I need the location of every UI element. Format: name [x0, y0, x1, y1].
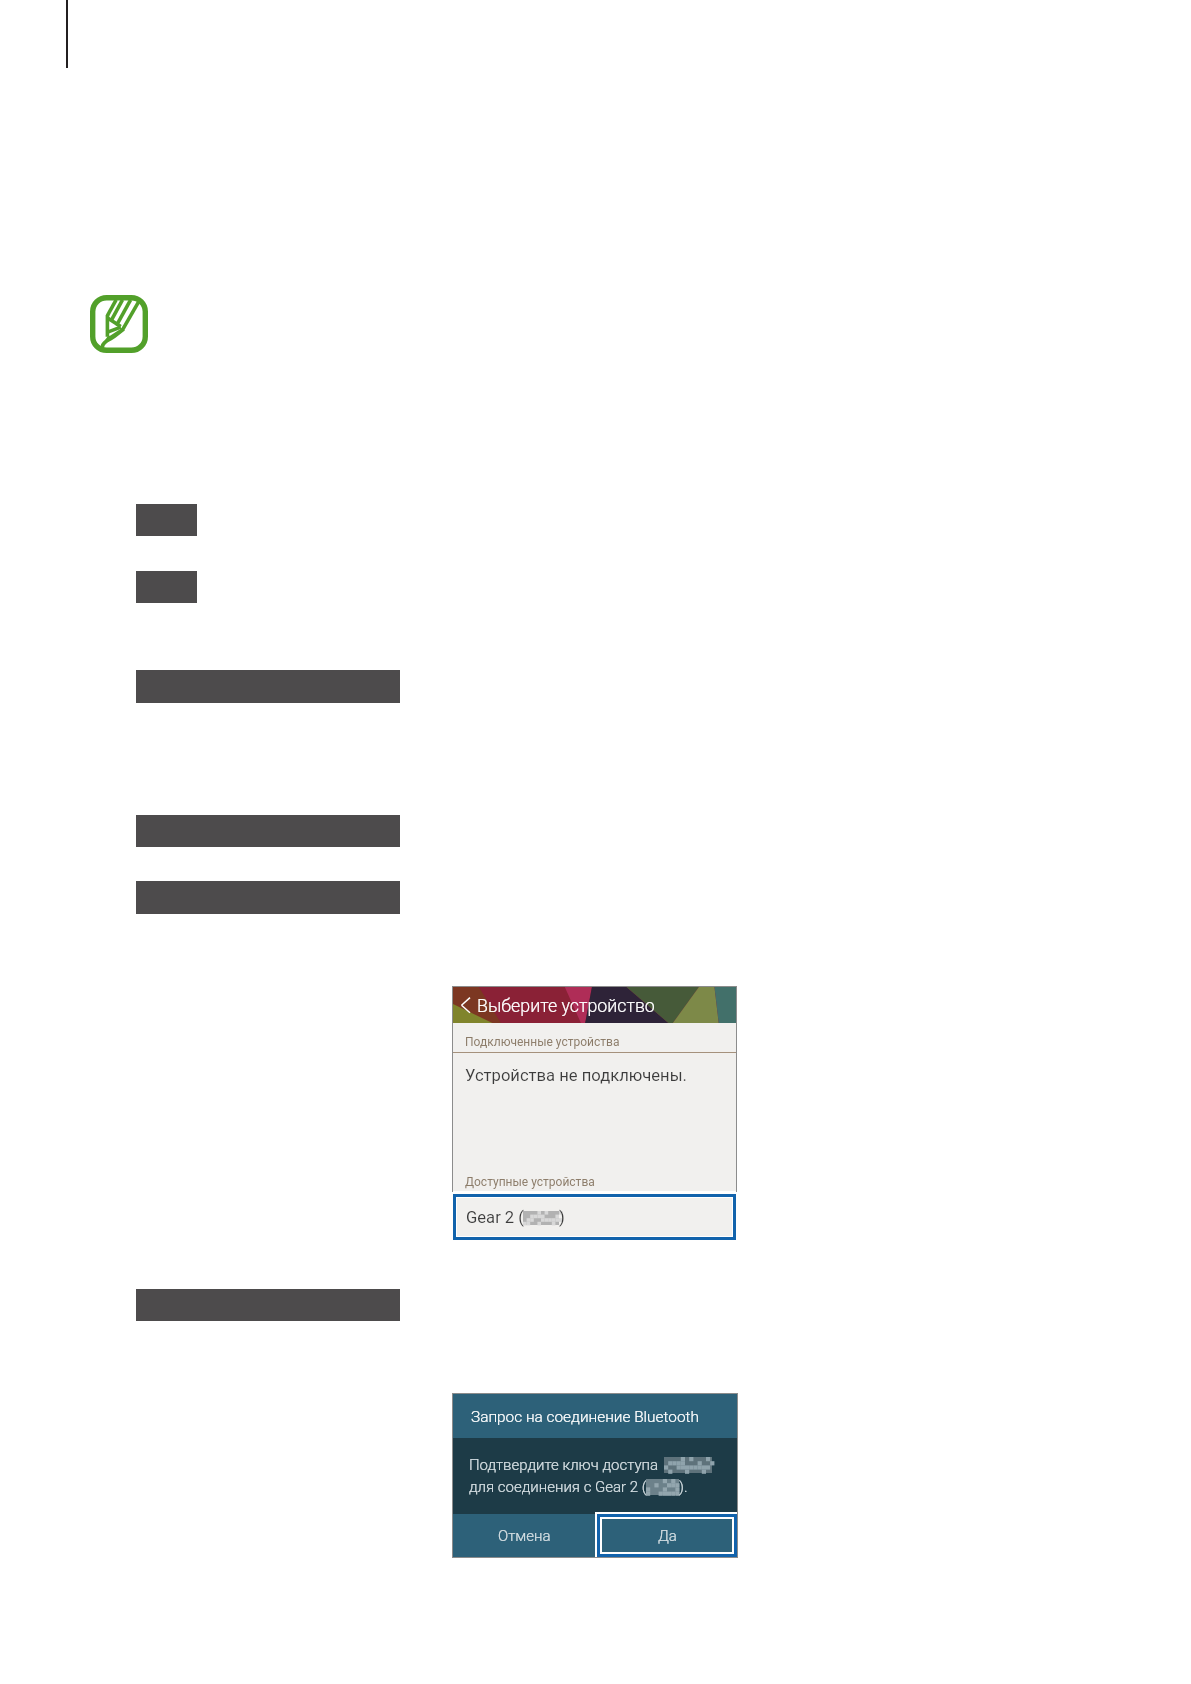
- staticText: Доступные устройства: [465, 1175, 595, 1189]
- button[interactable]: Gear 2 (: [457, 1198, 732, 1236]
- staticText: Выберите устройство: [477, 995, 655, 1016]
- staticText: Подключенные устройства: [465, 1035, 620, 1049]
- staticText: Отмена: [498, 1527, 551, 1545]
- staticText: Устройства не подключены.: [465, 1066, 687, 1085]
- button[interactable]: Back: [454, 995, 474, 1015]
- button[interactable]: Да: [602, 1519, 732, 1552]
- button[interactable]: Отмена: [453, 1514, 595, 1557]
- staticText: Gear 2 (: [466, 1208, 524, 1227]
- staticText: Да: [658, 1527, 677, 1545]
- staticText: Запрос на соединение Bluetooth: [471, 1408, 699, 1426]
- staticText: ).: [679, 1478, 688, 1496]
- staticText: Подтвердите ключ доступа: [469, 1456, 659, 1474]
- staticText: для соединения с Gear 2 (: [469, 1478, 647, 1496]
- staticText: ): [559, 1208, 565, 1227]
